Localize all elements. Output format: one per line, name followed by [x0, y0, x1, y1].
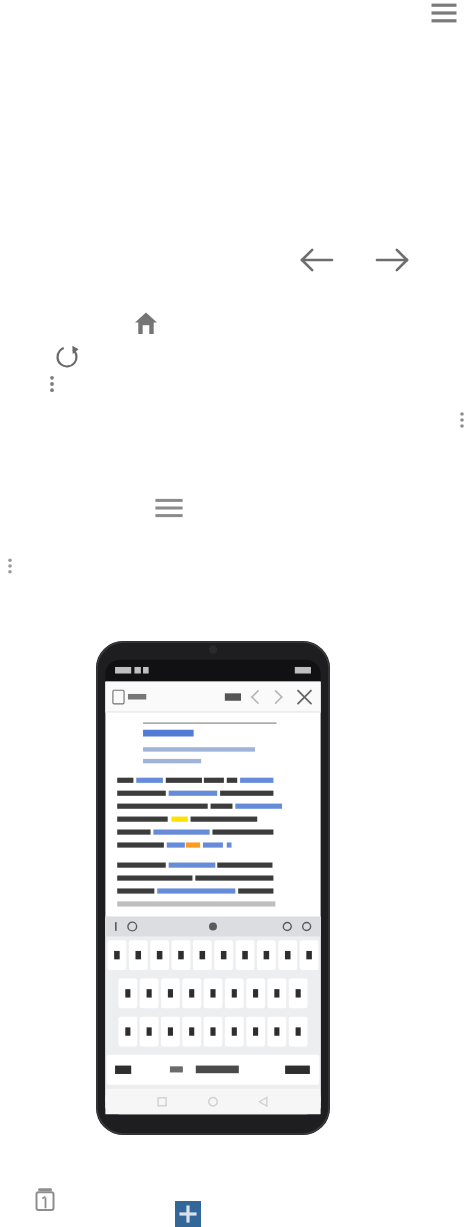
button[interactable]: Menu: [152, 496, 186, 520]
button[interactable]: More options: [452, 406, 472, 434]
button[interactable]: Refresh: [52, 342, 82, 372]
button[interactable]: Home: [131, 309, 161, 337]
button[interactable]: More options: [42, 370, 62, 398]
button[interactable]: More options: [1, 553, 19, 579]
button[interactable]: New tab: [175, 1201, 201, 1227]
button[interactable]: Tabs: [31, 1185, 59, 1215]
button[interactable]: Back: [296, 243, 338, 277]
button[interactable]: Forward: [371, 243, 413, 277]
button[interactable]: Menu: [428, 2, 460, 24]
